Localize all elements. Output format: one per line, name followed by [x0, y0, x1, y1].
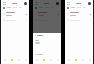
button[interactable]: Meet: [40, 56, 47, 64]
button[interactable]: Navigation menu: [67, 2, 70, 5]
button[interactable]: Mail: [33, 56, 40, 64]
button[interactable]: Spaces: [86, 56, 93, 64]
button[interactable]: [3, 11, 27, 17]
button[interactable]: Mail: [33, 56, 40, 64]
button[interactable]: Compose: [67, 7, 69, 9]
button[interactable]: Mail: [65, 56, 72, 64]
button[interactable]: Account: [56, 2, 59, 5]
button[interactable]: Navigation menu: [35, 2, 38, 5]
button[interactable]: Meet: [72, 56, 79, 64]
button[interactable]: Navigation menu: [3, 2, 6, 5]
button[interactable]: Meet: [8, 56, 15, 64]
button[interactable]: Meet: [40, 56, 47, 64]
button[interactable]: [3, 18, 27, 22]
button[interactable]: Account: [24, 2, 27, 5]
button[interactable]: [67, 11, 91, 17]
button[interactable]: Spaces: [54, 56, 61, 64]
button[interactable]: [67, 18, 91, 22]
button[interactable]: Reply: [35, 42, 40, 44]
button[interactable]: Spaces: [54, 56, 61, 64]
button[interactable]: Spaces: [22, 56, 29, 64]
button[interactable]: Chat: [47, 56, 54, 64]
button[interactable]: Mail: [1, 56, 8, 64]
button[interactable]: Compose: [3, 7, 5, 9]
button[interactable]: Chat: [47, 56, 54, 64]
button[interactable]: Chat: [15, 56, 22, 64]
button[interactable]: Account: [88, 2, 91, 5]
button[interactable]: Chat: [79, 56, 86, 64]
button[interactable]: [35, 11, 59, 17]
button[interactable]: [35, 18, 59, 22]
